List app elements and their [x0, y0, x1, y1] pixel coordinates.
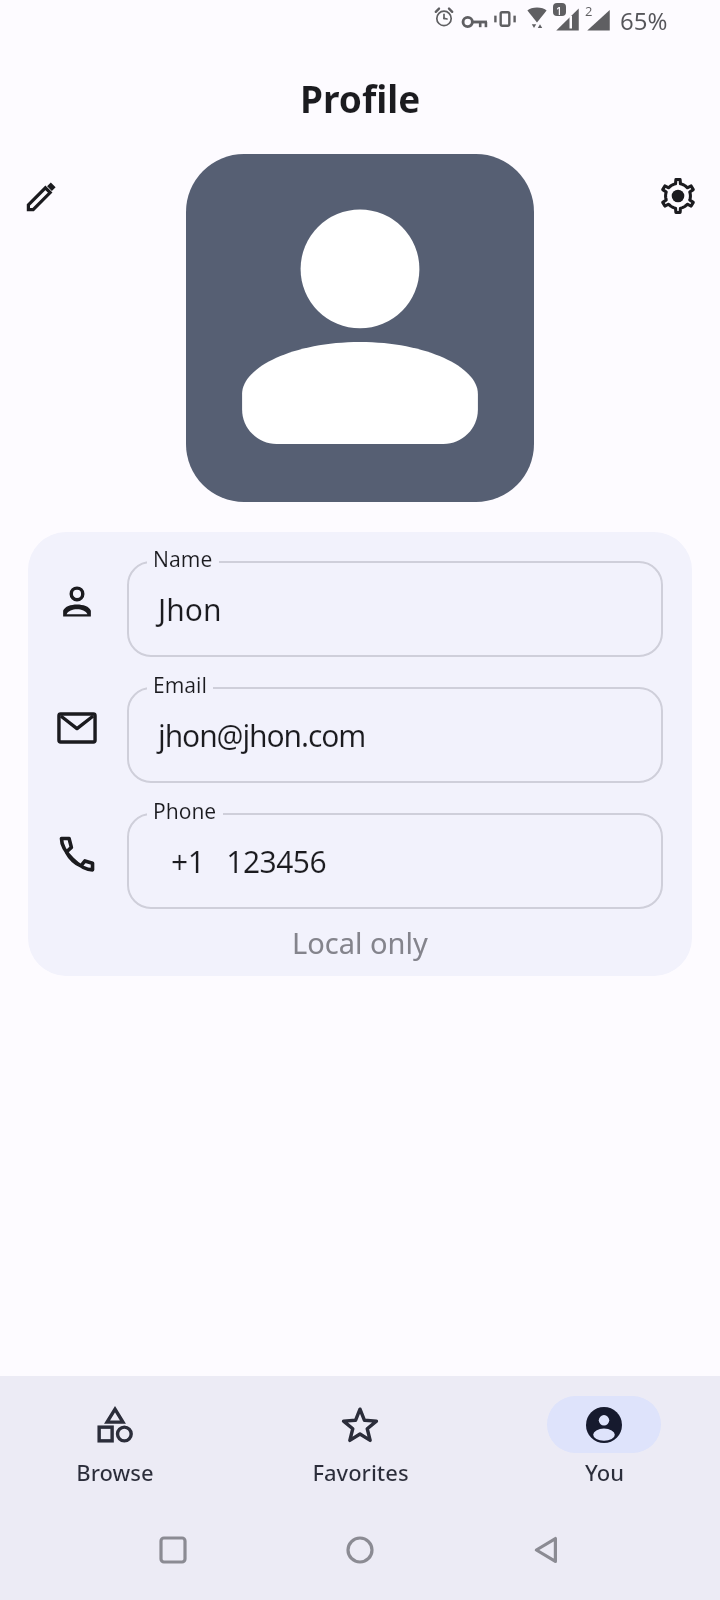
button[interactable]: jhon@jhon.com	[127, 687, 663, 783]
staticText: 1	[556, 3, 563, 16]
staticText: Phone	[153, 797, 217, 826]
staticText: Profile	[300, 73, 421, 123]
button[interactable]: Profile photo	[186, 154, 534, 502]
button[interactable]: You	[524, 1384, 684, 1484]
staticText: +1 123456	[171, 841, 327, 882]
staticText: Email	[153, 671, 207, 700]
button[interactable]: +1 123456	[127, 813, 663, 909]
button[interactable]: Favorites	[280, 1384, 440, 1484]
staticText: Local only	[292, 923, 428, 962]
staticText: Name	[153, 545, 213, 574]
staticText: Favorites	[312, 1457, 409, 1487]
staticText: jhon@jhon.com	[158, 715, 366, 756]
staticText: Browse	[76, 1457, 154, 1487]
button[interactable]: Jhon	[127, 561, 663, 657]
staticText: You	[585, 1457, 624, 1487]
staticText: Jhon	[158, 589, 222, 630]
staticText: 2	[585, 2, 593, 20]
button[interactable]: Browse	[35, 1384, 195, 1484]
button[interactable]: Settings	[654, 172, 702, 220]
button[interactable]: Edit profile	[18, 172, 66, 220]
staticText: 65%	[620, 4, 668, 37]
